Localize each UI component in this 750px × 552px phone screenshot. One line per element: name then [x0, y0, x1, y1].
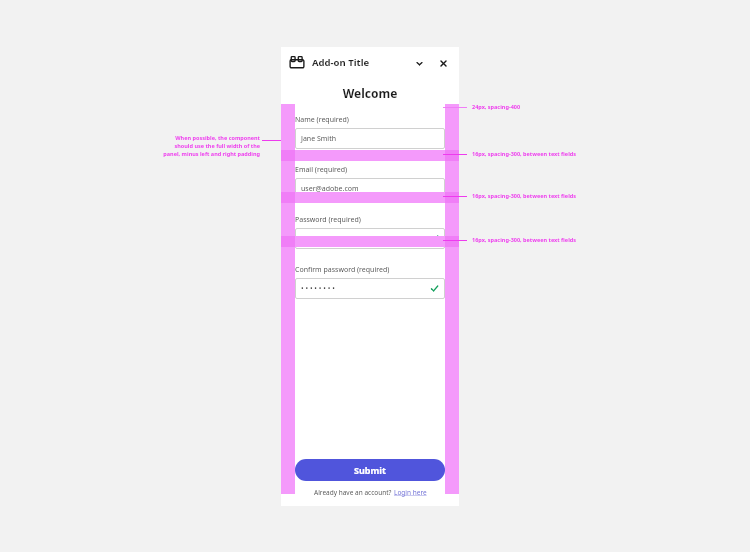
staticText: 16px, spacing-300, between text fields: [472, 192, 577, 199]
staticText: Email (required): [295, 165, 348, 175]
staticText: Already have an account?: [314, 488, 394, 497]
button[interactable]: Collapse: [411, 55, 427, 71]
staticText: user@adobe.com: [301, 184, 359, 194]
staticText: • • • • • • • •: [301, 284, 335, 294]
staticText: 16px, spacing-300, between text fields: [472, 150, 577, 157]
staticText: 24px, spacing-400: [472, 103, 521, 110]
button[interactable]: user@adobe.com: [295, 178, 445, 199]
staticText: Add-on Title: [312, 56, 370, 69]
staticText: Confirm password (required): [295, 265, 390, 275]
button[interactable]: Submit: [295, 459, 445, 481]
button[interactable]: • • • • • • • •: [295, 278, 445, 299]
staticText: Name (required): [295, 115, 349, 125]
staticText: When possible, the component should use …: [150, 134, 260, 158]
button[interactable]: Jane Smith: [295, 128, 445, 149]
staticText: Login here: [394, 488, 427, 497]
staticText: 16px, spacing-300, between text fields: [472, 236, 577, 243]
staticText: Password (required): [295, 215, 361, 225]
button[interactable]: Login here: [394, 488, 427, 497]
staticText: Welcome: [281, 85, 459, 101]
button[interactable]: Close: [435, 55, 451, 71]
staticText: • • • • • • • •: [301, 234, 335, 244]
staticText: Jane Smith: [301, 134, 336, 144]
staticText: Submit: [354, 464, 386, 476]
button[interactable]: • • • • • • • •: [295, 228, 445, 249]
